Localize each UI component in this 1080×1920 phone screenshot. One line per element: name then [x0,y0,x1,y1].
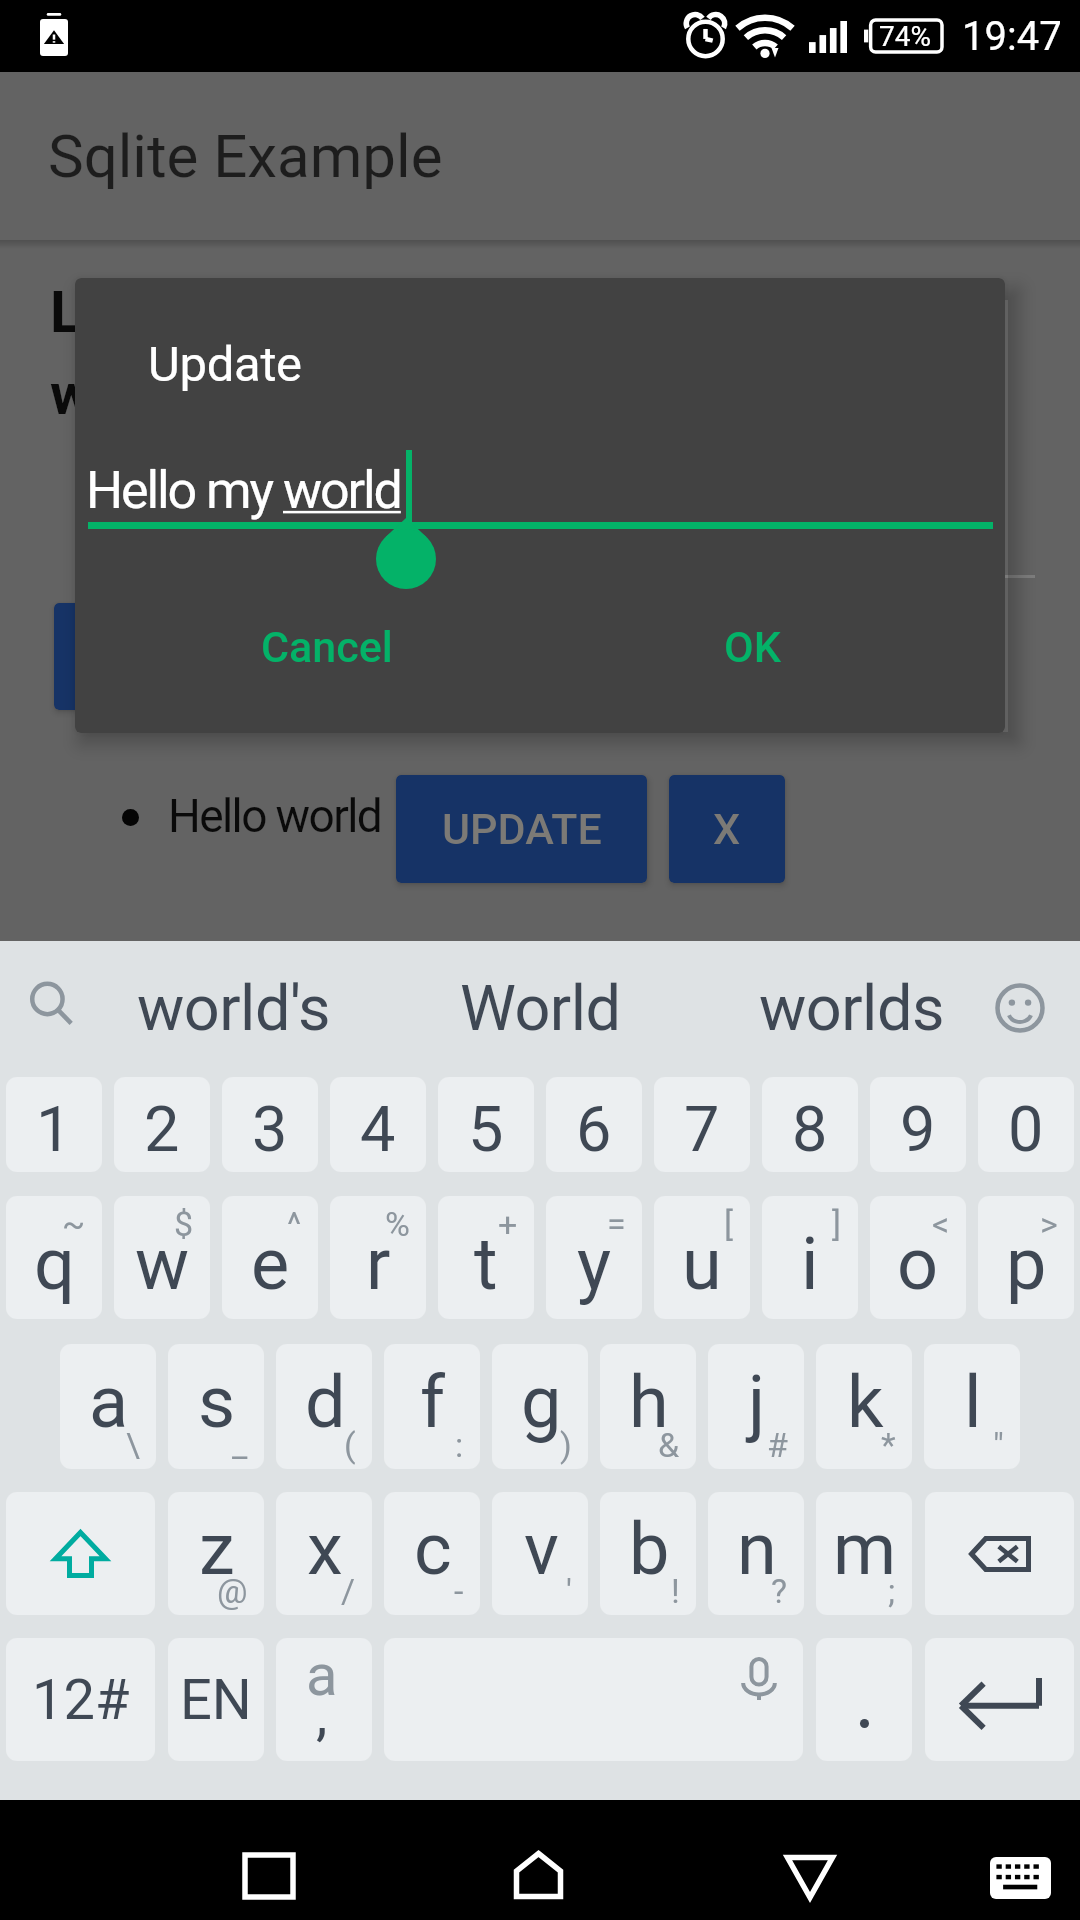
button[interactable]: Space [384,1638,803,1761]
staticText: 3 [252,1093,288,1167]
staticText: world [283,460,401,521]
button[interactable]: a [276,1638,372,1761]
staticText: 5 [468,1093,504,1167]
button[interactable]: n [708,1492,804,1615]
staticText: L [50,278,82,346]
button[interactable]: v [492,1492,588,1615]
staticText: % [385,1204,410,1244]
button[interactable]: r [330,1196,426,1319]
button[interactable]: World [420,941,660,1076]
staticText: - [454,1571,464,1611]
button[interactable]: backspace [925,1492,1074,1615]
button[interactable]: i [762,1196,858,1319]
button[interactable]: z [168,1492,264,1615]
button[interactable]: l [924,1344,1020,1469]
staticText: 9 [900,1093,936,1167]
button[interactable]: d [276,1344,372,1469]
button[interactable]: g [492,1344,588,1469]
staticText: EN [180,1667,252,1733]
button[interactable]: e [222,1196,318,1319]
button[interactable]: 12# [6,1638,155,1761]
button[interactable]: OK [672,602,832,692]
button[interactable]: 3 [222,1077,318,1172]
button[interactable]: 0 [978,1077,1074,1172]
button[interactable]: 6 [546,1077,642,1172]
staticText: & [658,1425,680,1465]
button[interactable]: EN [168,1638,264,1761]
button[interactable]: Enter [925,1638,1074,1761]
button[interactable]: w [114,1196,210,1319]
staticText: n [737,1507,777,1591]
staticText: r [366,1222,391,1306]
button[interactable]: 2 [114,1077,210,1172]
staticText: j [748,1360,766,1444]
button[interactable]: Cancel [247,602,407,692]
button[interactable]: 4 [330,1077,426,1172]
staticText: OK [724,622,781,672]
button[interactable]: c [384,1492,480,1615]
staticText: 74% [879,20,931,53]
button[interactable]: u [654,1196,750,1319]
button[interactable]: shift [6,1492,155,1615]
button[interactable]: 9 [870,1077,966,1172]
button[interactable]: a [60,1344,156,1469]
staticText: q [34,1222,75,1306]
button[interactable] [54,603,234,710]
button[interactable]: UPDATE [396,775,647,883]
staticText: 2 [144,1093,180,1167]
staticText: 0 [1008,1093,1044,1167]
button[interactable]: b [600,1492,696,1615]
staticText: g [521,1360,562,1444]
button[interactable]: 7 [654,1077,750,1172]
button[interactable]: h [600,1344,696,1469]
button[interactable]: X [669,775,785,883]
button[interactable]: k [816,1344,912,1469]
button[interactable]: o [870,1196,966,1319]
staticText: b [629,1507,670,1591]
button[interactable]: s [168,1344,264,1469]
button[interactable]: y [546,1196,642,1319]
button[interactable]: q [6,1196,102,1319]
staticText: l [964,1360,982,1444]
staticText: w [50,360,93,428]
staticText: e [251,1222,290,1306]
staticText: * [881,1425,896,1465]
staticText: 6 [576,1093,612,1167]
button[interactable] [816,1638,912,1761]
staticText: 7 [684,1093,720,1167]
button[interactable]: Home [488,1818,588,1902]
button[interactable]: 1 [6,1077,102,1172]
staticText: k [847,1360,884,1444]
button[interactable]: m [816,1492,912,1615]
button[interactable]: Keyboard [975,1818,1067,1902]
button[interactable]: Back [760,1818,860,1902]
staticText: ? [771,1571,788,1611]
staticText: " [993,1425,1004,1465]
staticText: s [198,1360,236,1444]
button[interactable]: 5 [438,1077,534,1172]
staticText: world's [137,972,331,1046]
button[interactable]: x [276,1492,372,1615]
button[interactable]: Search [16,968,88,1048]
button[interactable]: Recents [219,1818,319,1902]
staticText: o [897,1222,939,1306]
button[interactable]: worlds [731,941,971,1076]
staticText: a [89,1360,129,1444]
staticText: 1 [36,1093,72,1167]
button[interactable]: t [438,1196,534,1319]
staticText: < [932,1204,950,1244]
button[interactable]: f [384,1344,480,1469]
staticText: ~ [62,1204,86,1244]
staticText: # [767,1425,788,1465]
staticText: h [629,1360,669,1444]
button[interactable]: p [978,1196,1074,1319]
staticText: z [199,1507,235,1591]
button[interactable]: Emoji [975,968,1065,1048]
button[interactable]: j [708,1344,804,1469]
staticText: x [307,1507,343,1591]
staticText: t [474,1222,498,1306]
button[interactable]: world's [114,941,354,1076]
button[interactable]: 8 [762,1077,858,1172]
staticText: 12# [32,1667,130,1733]
staticText: d [305,1360,346,1444]
